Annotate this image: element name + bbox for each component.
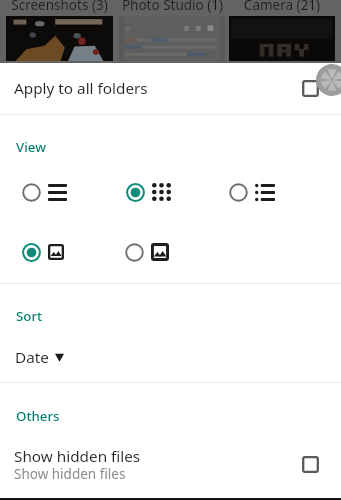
button[interactable]: View option xyxy=(22,178,67,206)
staticText: Screenshots (3) xyxy=(5,0,114,14)
button[interactable]: View option xyxy=(229,178,275,206)
button[interactable]: View option xyxy=(126,178,171,206)
staticText: Others xyxy=(16,407,60,425)
staticText: Apply to all folders xyxy=(14,78,148,99)
staticText: Camera (21) xyxy=(228,0,336,14)
button[interactable]: View option xyxy=(125,238,169,266)
staticText: Sort xyxy=(16,307,43,325)
staticText: Date xyxy=(15,347,49,368)
staticText: Show hidden files xyxy=(14,465,126,483)
button[interactable]: Show hidden files xyxy=(0,441,341,489)
button[interactable]: View option xyxy=(22,238,64,266)
staticText: Show hidden files xyxy=(14,446,141,467)
button[interactable]: Apply to all folders xyxy=(0,63,341,114)
button[interactable]: Assistant menu xyxy=(316,64,341,96)
staticText: View xyxy=(16,138,46,156)
button[interactable]: Date xyxy=(0,341,341,373)
staticText: Photo Studio (1) xyxy=(118,0,227,14)
